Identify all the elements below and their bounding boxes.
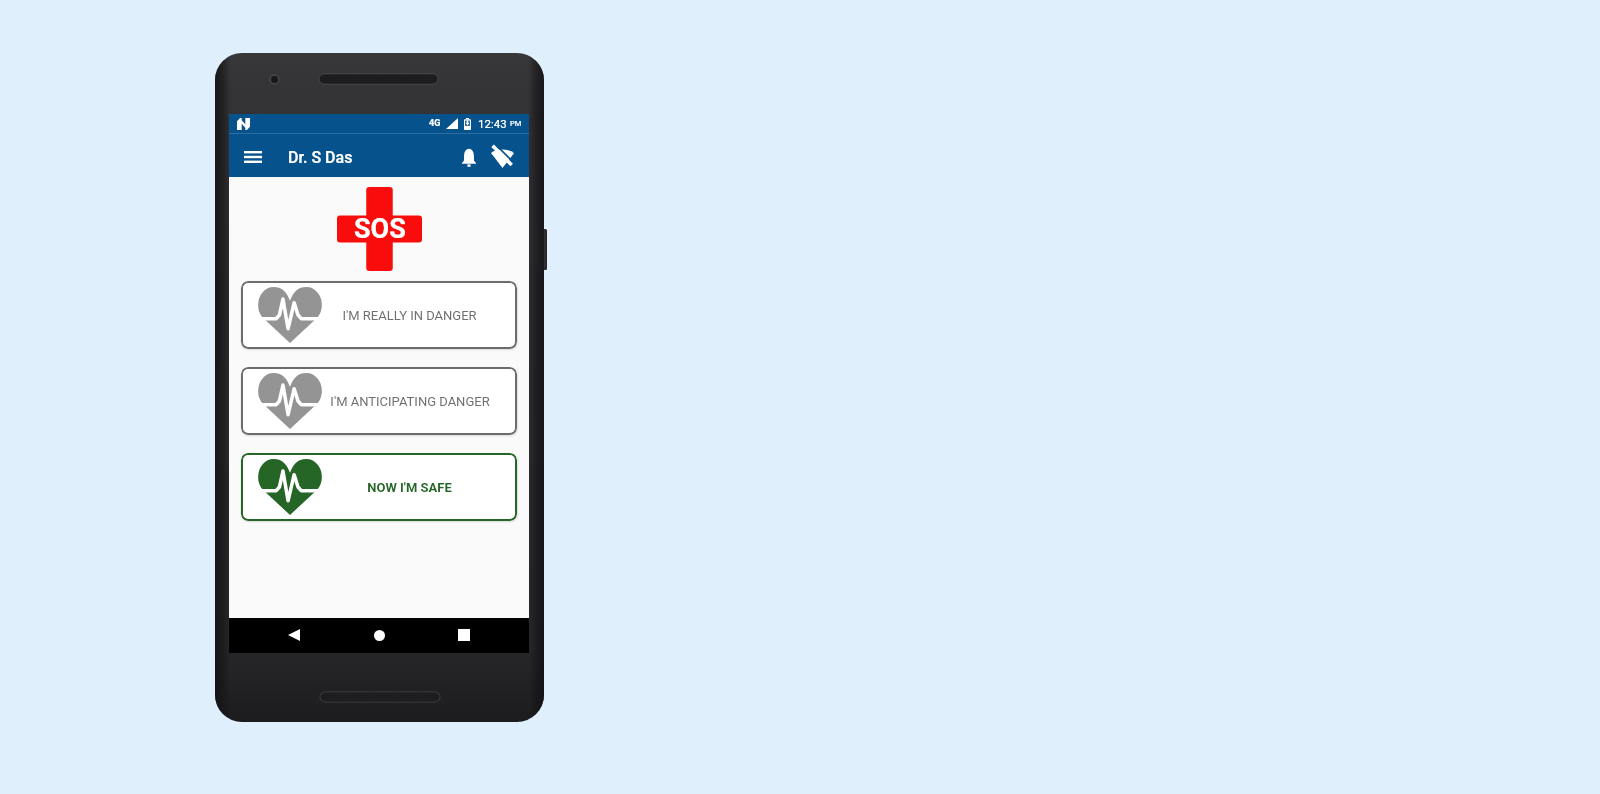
button[interactable]: Back (274, 618, 317, 652)
staticText: I'M ANTICIPATING DANGER (330, 394, 490, 409)
button[interactable]: Recent apps (442, 618, 485, 652)
button[interactable]: Home (358, 618, 401, 652)
staticText: I'M REALLY IN DANGER (342, 308, 477, 323)
staticText: Dr. S Das (288, 148, 353, 167)
staticText: SOS (354, 213, 406, 245)
button[interactable]: Notifications (458, 144, 480, 170)
staticText: 12:43 (478, 117, 507, 130)
staticText: NOW I'M SAFE (367, 480, 452, 495)
button[interactable]: Wi-Fi off (491, 144, 514, 170)
button[interactable]: NOW I'M SAFE (241, 453, 517, 521)
button[interactable]: I'M REALLY IN DANGER (241, 281, 517, 349)
button[interactable]: I'M ANTICIPATING DANGER (241, 367, 517, 435)
staticText: PM (510, 119, 522, 128)
staticText: 4G (429, 118, 441, 129)
button[interactable]: Open navigation menu (244, 143, 262, 171)
